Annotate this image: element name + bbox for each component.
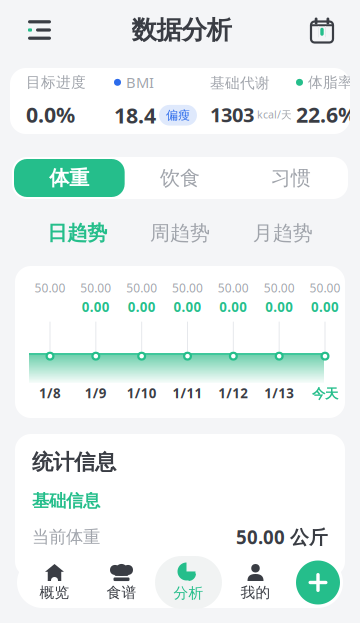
staticText: 统计信息: [32, 449, 116, 475]
staticText: 0.00: [128, 298, 156, 316]
staticText: 食谱: [106, 583, 136, 601]
button[interactable]: 分析: [155, 556, 222, 609]
staticText: 概览: [39, 583, 69, 601]
button[interactable]: 饮食: [125, 159, 235, 197]
button[interactable]: 周趋势: [129, 216, 231, 250]
staticText: 50.00: [309, 280, 340, 296]
staticText: 50.00: [264, 280, 295, 296]
staticText: 0.00: [82, 298, 110, 316]
button[interactable]: Add: [296, 560, 340, 604]
staticText: 基础代谢: [210, 74, 270, 92]
staticText: 偏瘦: [166, 108, 190, 123]
staticText: 50.00: [34, 280, 65, 296]
staticText: 1303: [210, 101, 254, 128]
staticText: 习惯: [271, 166, 311, 190]
button[interactable]: 月趋势: [231, 216, 334, 250]
button[interactable]: 我的: [222, 556, 289, 608]
staticText: 1/9: [85, 384, 107, 402]
staticText: 1/8: [39, 384, 61, 402]
button[interactable]: 日趋势: [26, 216, 129, 250]
staticText: 日趋势: [47, 221, 107, 245]
staticText: 1/13: [264, 384, 294, 402]
staticText: 今天: [312, 386, 338, 402]
staticText: 0.00: [173, 298, 201, 316]
staticText: 0.0%: [26, 100, 75, 129]
button[interactable]: Calendar: [305, 12, 339, 47]
staticText: 基础信息: [32, 490, 100, 511]
staticText: 18.4: [114, 101, 156, 129]
staticText: 周趋势: [150, 221, 210, 245]
staticText: 0.00: [311, 298, 339, 316]
staticText: 月趋势: [253, 221, 313, 245]
staticText: 目标进度: [26, 73, 86, 91]
staticText: 体重: [49, 166, 89, 190]
staticText: 数据分析: [131, 14, 231, 45]
staticText: 50.00: [218, 280, 249, 296]
staticText: 体脂率: [308, 73, 353, 91]
staticText: 饮食: [160, 166, 200, 190]
button[interactable]: 体重: [14, 159, 125, 197]
staticText: 50.00: [80, 280, 111, 296]
button[interactable]: Menu: [21, 13, 58, 47]
staticText: 0.00: [219, 298, 247, 316]
staticText: 0.00: [265, 298, 293, 316]
staticText: BMI: [126, 73, 154, 92]
button[interactable]: 习惯: [235, 159, 346, 197]
staticText: 我的: [240, 583, 270, 601]
staticText: 1/11: [172, 384, 202, 402]
staticText: kcal/天: [257, 107, 292, 122]
staticText: 分析: [173, 584, 203, 602]
staticText: 1/12: [218, 384, 248, 402]
staticText: 22.6%: [296, 100, 357, 129]
staticText: 50.00: [172, 280, 203, 296]
staticText: 50.00 公斤: [236, 524, 328, 549]
button[interactable]: 食谱: [88, 556, 155, 608]
button[interactable]: 概览: [21, 556, 88, 608]
staticText: 50.00: [126, 280, 157, 296]
staticText: 1/10: [127, 384, 157, 402]
staticText: 当前体重: [32, 526, 100, 547]
